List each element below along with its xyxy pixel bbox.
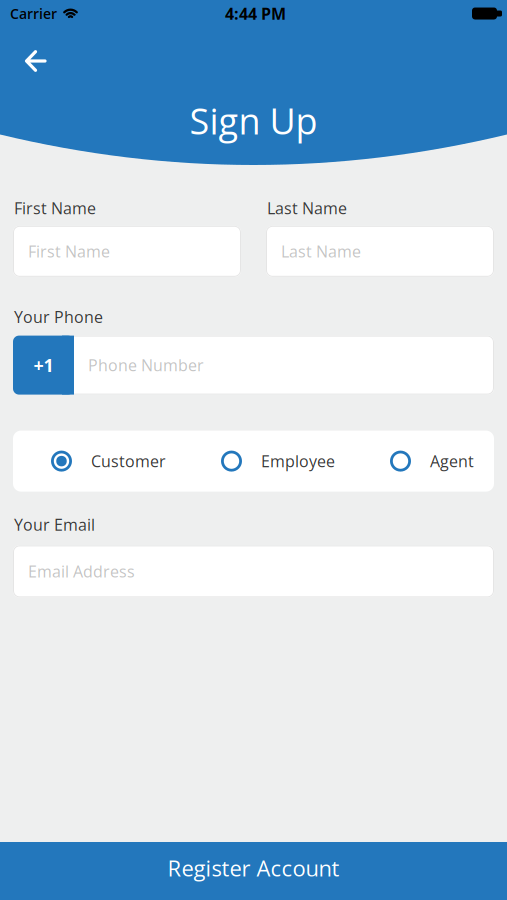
- staticText: Email Address: [28, 560, 135, 582]
- button[interactable]: Agent: [390, 450, 474, 472]
- staticText: Last Name: [281, 240, 361, 262]
- staticText: First Name: [14, 197, 96, 219]
- button[interactable]: Register Account: [0, 842, 507, 900]
- button[interactable]: Employee: [221, 450, 335, 472]
- button[interactable]: Customer: [51, 450, 166, 472]
- staticText: 4:44 PM: [225, 3, 286, 24]
- staticText: Sign Up: [189, 96, 317, 145]
- staticText: Employee: [261, 450, 335, 472]
- staticText: Last Name: [267, 197, 347, 219]
- staticText: Register Account: [167, 853, 339, 883]
- button[interactable]: Country code +1: [13, 336, 74, 395]
- staticText: Your Phone: [14, 306, 103, 328]
- staticText: Agent: [430, 450, 474, 472]
- button[interactable]: Back: [17, 41, 53, 81]
- staticText: First Name: [28, 240, 110, 262]
- staticText: Your Email: [14, 514, 95, 535]
- staticText: Phone Number: [88, 354, 204, 376]
- staticText: Customer: [91, 450, 166, 472]
- staticText: Carrier: [10, 4, 57, 23]
- staticText: +1: [33, 353, 53, 377]
